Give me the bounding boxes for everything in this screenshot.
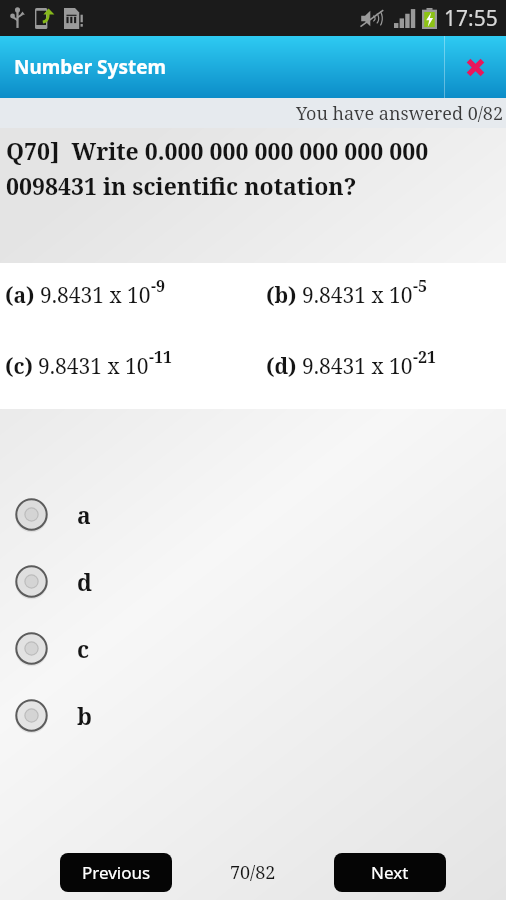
- staticText: c: [77, 633, 90, 664]
- staticText: 9.8431 x 10: [302, 281, 413, 310]
- staticText: (d): [266, 352, 297, 381]
- button[interactable]: Close: [445, 36, 506, 98]
- staticText: 17:55: [444, 4, 498, 33]
- button[interactable]: Next: [334, 853, 446, 892]
- staticText: -5: [413, 275, 428, 297]
- staticText: 9.8431 x 10: [40, 281, 151, 310]
- staticText: Previous: [82, 861, 151, 884]
- staticText: You have answered 0/82: [296, 101, 503, 126]
- staticText: -21: [413, 346, 437, 368]
- staticText: (a): [5, 281, 35, 310]
- button[interactable]: a: [0, 481, 506, 548]
- staticText: Next: [371, 861, 409, 884]
- staticText: 9.8431 x 10: [38, 352, 149, 381]
- staticText: -11: [149, 346, 173, 368]
- staticText: Number System: [14, 54, 167, 80]
- button[interactable]: d: [0, 548, 506, 615]
- button[interactable]: Previous: [60, 853, 172, 892]
- staticText: 0098431 in scientific notation?: [6, 170, 357, 201]
- staticText: Q70] Write 0.000 000 000 000 000 000: [6, 135, 429, 166]
- button[interactable]: b: [0, 682, 506, 749]
- staticText: d: [77, 566, 92, 597]
- staticText: a: [77, 499, 91, 530]
- staticText: (b): [266, 281, 297, 310]
- staticText: (c): [5, 352, 33, 381]
- staticText: -9: [151, 275, 166, 297]
- staticText: b: [77, 700, 92, 731]
- staticText: 70/82: [230, 860, 276, 885]
- staticText: 9.8431 x 10: [302, 352, 413, 381]
- button[interactable]: c: [0, 615, 506, 682]
